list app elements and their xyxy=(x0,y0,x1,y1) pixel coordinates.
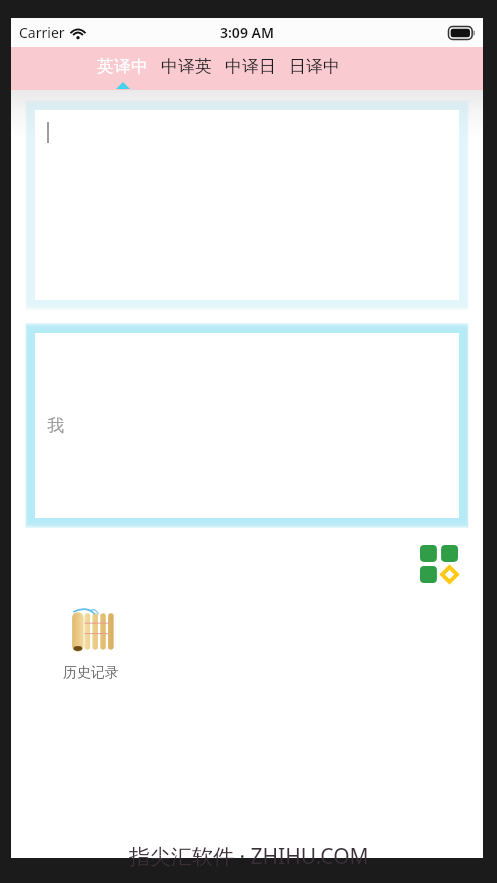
button[interactable]: 中译日 xyxy=(225,47,276,90)
staticText: 中译日 xyxy=(225,56,276,77)
staticText: 日译中 xyxy=(289,56,340,77)
staticText: 指尖汇软件 · ZHIHU.COM xyxy=(129,842,369,871)
button[interactable]: 英译中 xyxy=(97,47,148,90)
staticText: 历史记录 xyxy=(63,664,119,682)
button[interactable]: 我 xyxy=(35,333,459,518)
button[interactable]: 日译中 xyxy=(289,47,340,90)
staticText: 3:09 AM xyxy=(220,23,274,42)
button[interactable]: 历史记录 xyxy=(63,607,119,682)
staticText: 我 xyxy=(47,415,64,436)
button[interactable]: 扫一扫 xyxy=(418,543,460,585)
staticText: Carrier xyxy=(19,23,65,42)
staticText: 中译英 xyxy=(161,56,212,77)
staticText: 英译中 xyxy=(97,56,148,77)
button[interactable]: 中译英 xyxy=(161,47,212,90)
